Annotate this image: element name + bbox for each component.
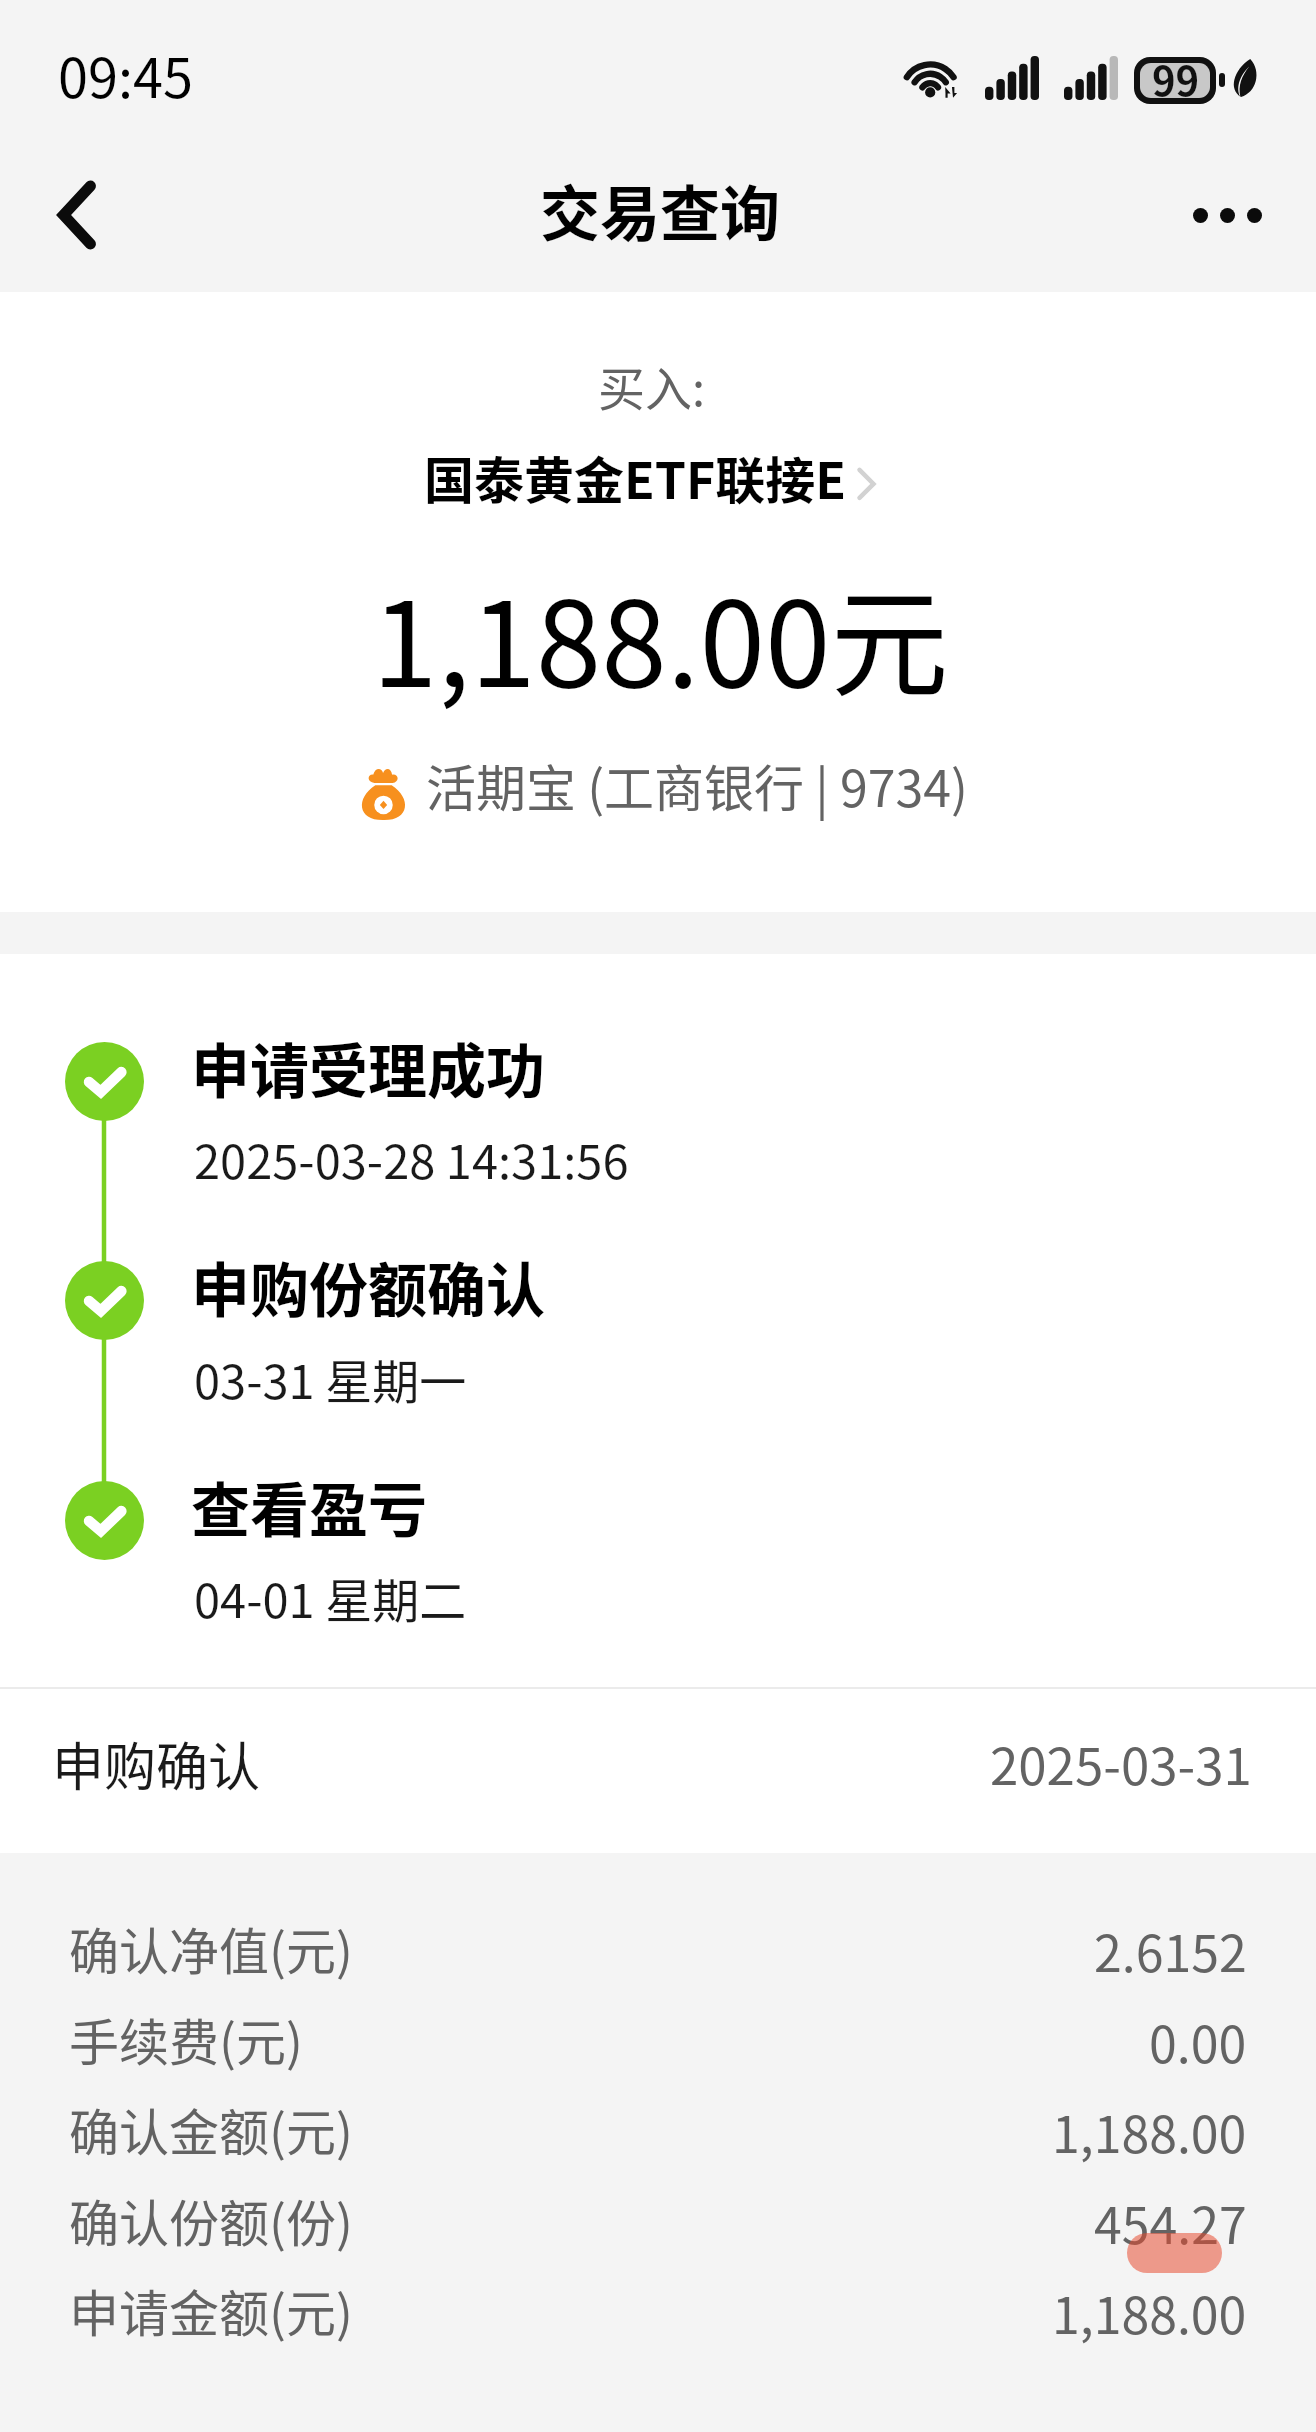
button[interactable]: 申购确认 [0,1689,1316,1853]
button[interactable]: More options [1166,146,1316,292]
button[interactable]: 确认净值(元) [0,1906,1316,1996]
staticText: 确认份额(份) [69,2184,353,2256]
staticText: 1,188.00 [1052,2095,1247,2167]
button[interactable]: 手续费(元) [0,1997,1316,2087]
button[interactable] [0,1194,1316,1394]
button[interactable] [0,974,1316,1174]
staticText: 2.6152 [1094,1914,1247,1986]
staticText: 申购确认 [52,1726,261,1801]
staticText: 99 [1152,50,1200,108]
button[interactable]: 确认金额(元) [0,2087,1316,2177]
staticText: 活期宝 (工商银行 | 9734) [426,749,968,821]
staticText: 0.00 [1149,2005,1247,2077]
staticText: 申请受理成功 [191,1025,546,1110]
button[interactable] [0,1414,1316,1614]
staticText: 454.27 [1094,2186,1247,2258]
staticText: 查看盈亏 [191,1464,428,1549]
staticText: 申请金额(元) [69,2274,353,2346]
staticText: 国泰黄金ETF联接E [424,441,846,513]
button[interactable]: 确认份额(份) [0,2178,1316,2268]
staticText: 09:45 [58,35,193,113]
staticText: 申购份额确认 [191,1244,546,1329]
staticText: 04-01 星期二 [194,1563,467,1631]
staticText: 2025-03-31 [990,1726,1252,1800]
staticText: 03-31 星期一 [194,1344,467,1412]
staticText: 手续费(元) [69,2003,303,2075]
button[interactable]: 国泰黄金ETF联接E [424,441,879,513]
staticText: 1,188.00元 [372,550,949,721]
staticText: 确认净值(元) [69,1912,353,1984]
staticText: 2025-03-28 14:31:56 [194,1124,629,1192]
staticText: 确认金额(元) [69,2093,353,2165]
button[interactable]: 申请金额(元) [0,2268,1316,2358]
button[interactable]: Back [0,146,150,292]
staticText: 交易查询 [540,166,780,253]
staticText: 买入: [598,351,706,419]
staticText: 1,188.00 [1052,2276,1247,2348]
